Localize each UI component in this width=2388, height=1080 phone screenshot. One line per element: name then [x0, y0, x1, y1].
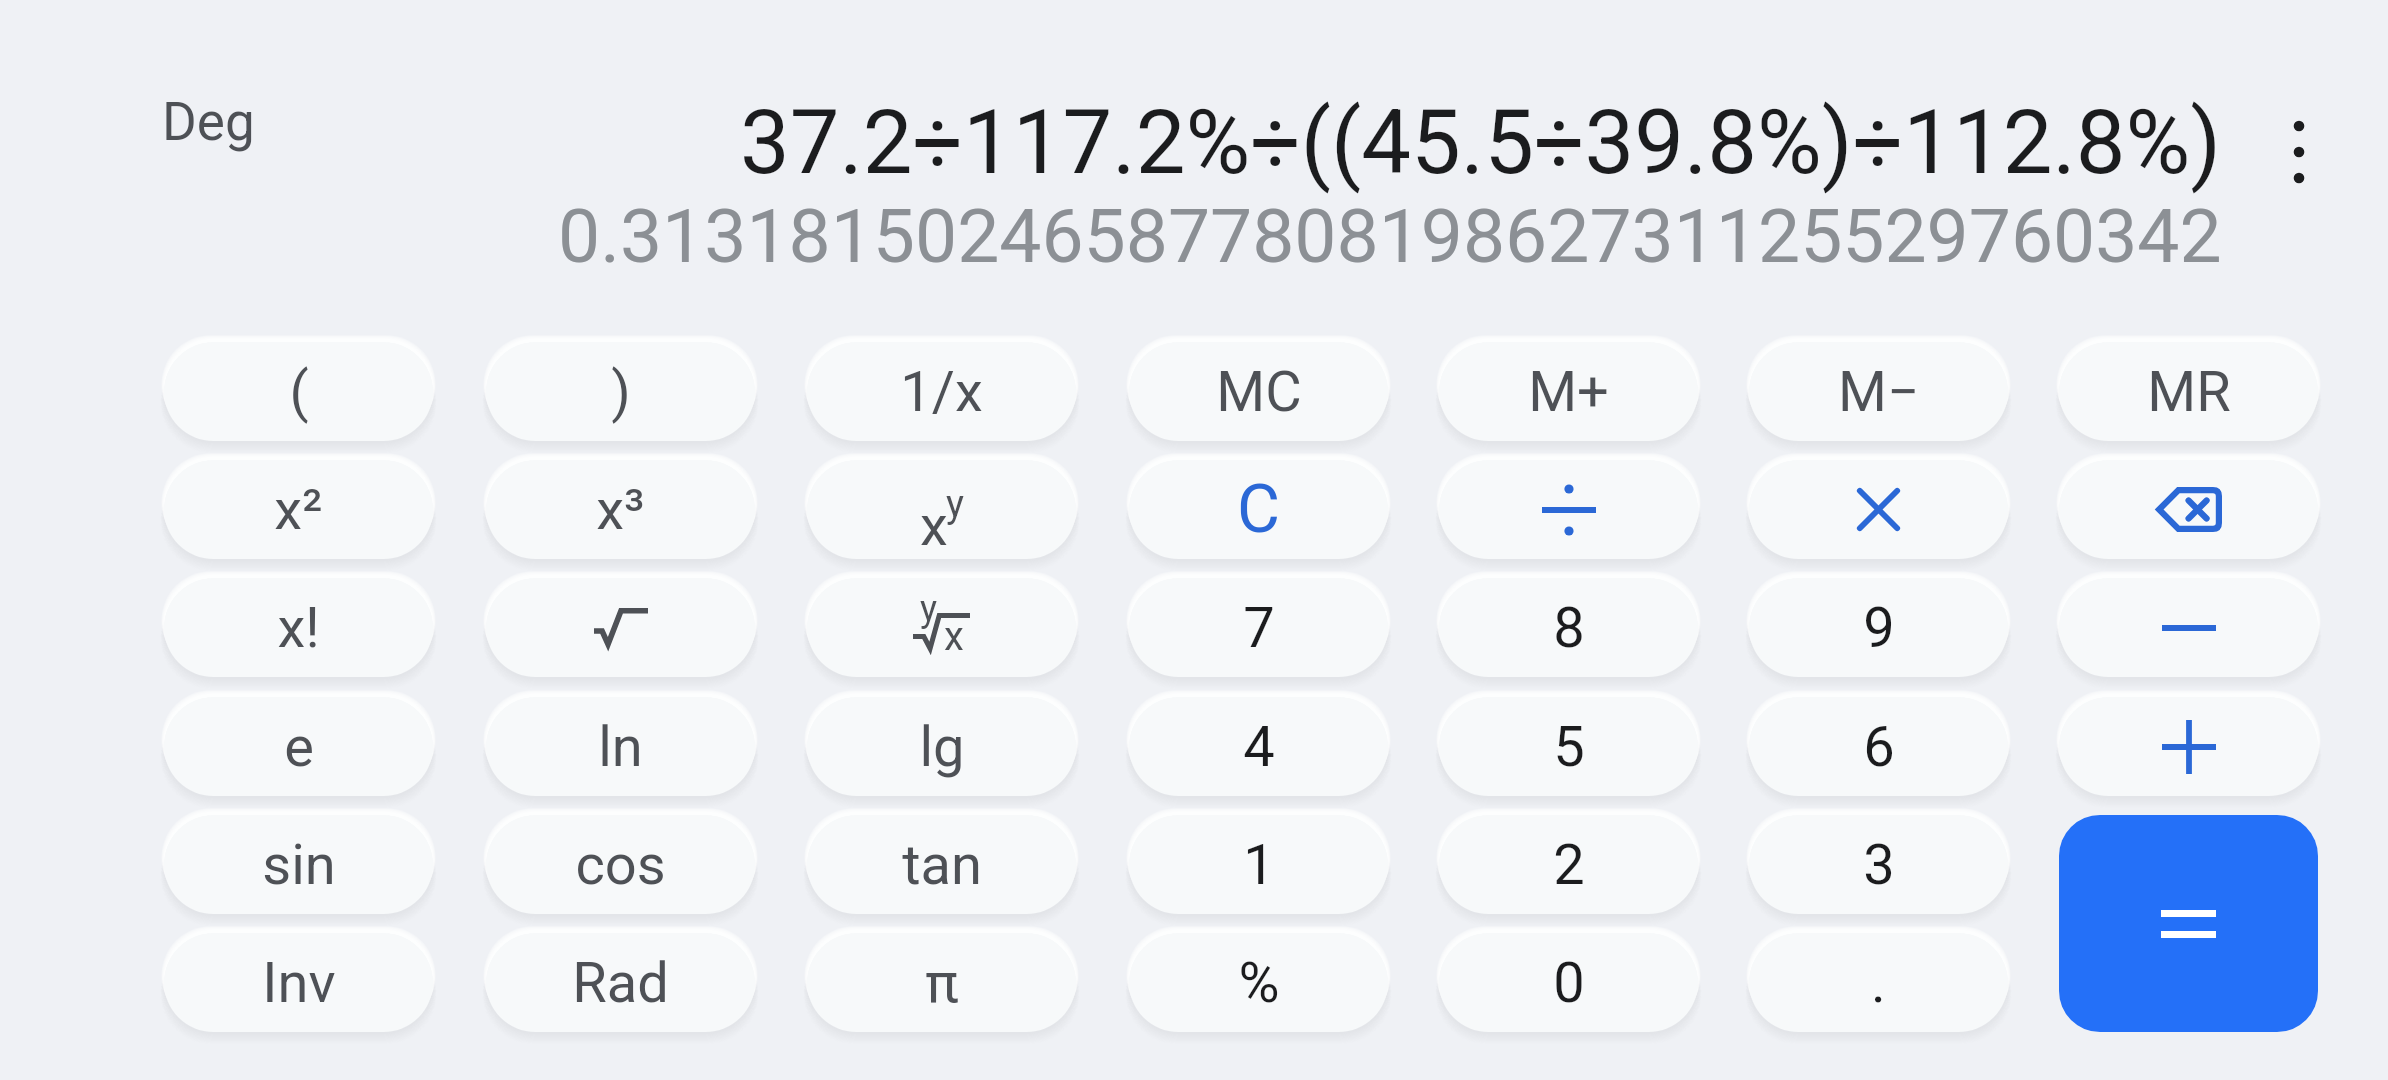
- staticText: (: [289, 359, 309, 425]
- staticText: x³: [596, 477, 645, 543]
- staticText: 8: [1553, 595, 1585, 661]
- staticText: M+: [1528, 359, 1609, 425]
- button[interactable]: Plus: [2059, 697, 2318, 796]
- button[interactable]: %: [1129, 933, 1388, 1032]
- button[interactable]: 1: [1129, 815, 1388, 914]
- staticText: ln: [598, 714, 643, 780]
- button[interactable]: 5: [1439, 697, 1698, 796]
- button[interactable]: e: [164, 697, 433, 796]
- button[interactable]: Equals: [2059, 815, 2318, 1032]
- button[interactable]: Square root: [486, 578, 755, 677]
- staticText: MR: [2147, 359, 2231, 425]
- button[interactable]: Backspace: [2059, 460, 2318, 559]
- button[interactable]: sin: [164, 815, 433, 914]
- button[interactable]: tan: [807, 815, 1076, 914]
- button[interactable]: x²: [164, 460, 433, 559]
- button[interactable]: x!: [164, 578, 433, 677]
- button[interactable]: ln: [486, 697, 755, 796]
- button[interactable]: cos: [486, 815, 755, 914]
- staticText: tan: [902, 832, 982, 898]
- button[interactable]: lg: [807, 697, 1076, 796]
- staticText: 37.2÷117.2%÷((45.5÷39.8%)÷112.8%): [740, 91, 2222, 195]
- staticText: %: [1238, 950, 1280, 1016]
- button[interactable]: 3: [1749, 815, 2008, 914]
- button[interactable]: MC: [1129, 342, 1388, 441]
- staticText: 0: [1553, 950, 1585, 1016]
- staticText: x: [944, 613, 964, 659]
- staticText: M−: [1838, 359, 1919, 425]
- button[interactable]: 8: [1439, 578, 1698, 677]
- button[interactable]: 0: [1439, 933, 1698, 1032]
- staticText: sin: [262, 832, 336, 898]
- staticText: x: [920, 493, 948, 553]
- staticText: lg: [919, 714, 965, 780]
- staticText: 5: [1553, 714, 1585, 780]
- staticText: Rad: [572, 950, 669, 1016]
- staticText: 4: [1243, 714, 1275, 780]
- button[interactable]: Rad: [486, 933, 755, 1032]
- staticText: 1/x: [900, 359, 983, 425]
- button[interactable]: 2: [1439, 815, 1698, 914]
- staticText: Inv: [262, 950, 336, 1016]
- button[interactable]: 7: [1129, 578, 1388, 677]
- button[interactable]: Divide: [1439, 460, 1698, 559]
- button[interactable]: π: [807, 933, 1076, 1032]
- button[interactable]: ): [486, 342, 755, 441]
- staticText: ): [611, 359, 631, 425]
- staticText: e: [284, 714, 314, 780]
- staticText: cos: [575, 832, 666, 898]
- button[interactable]: C: [1129, 460, 1388, 559]
- staticText: 7: [1243, 595, 1275, 661]
- staticText: y: [920, 588, 938, 630]
- button[interactable]: M+: [1439, 342, 1698, 441]
- button[interactable]: 1/x: [807, 342, 1076, 441]
- button[interactable]: Inv: [164, 933, 433, 1032]
- staticText: MC: [1216, 359, 1302, 425]
- staticText: y: [946, 482, 964, 527]
- button[interactable]: 4: [1129, 697, 1388, 796]
- button[interactable]: More options: [2270, 96, 2328, 208]
- button[interactable]: MR: [2059, 342, 2318, 441]
- button[interactable]: 6: [1749, 697, 2008, 796]
- button[interactable]: 9: [1749, 578, 2008, 677]
- button[interactable]: Minus: [2059, 578, 2318, 677]
- staticText: x²: [274, 477, 323, 543]
- staticText: C: [1237, 471, 1280, 548]
- staticText: π: [925, 950, 959, 1016]
- button[interactable]: .: [1749, 933, 2008, 1032]
- staticText: 3: [1863, 832, 1895, 898]
- staticText: 2: [1553, 832, 1585, 898]
- staticText: 6: [1863, 714, 1895, 780]
- staticText: 9: [1863, 595, 1895, 661]
- staticText: x!: [277, 595, 320, 661]
- button[interactable]: (: [164, 342, 433, 441]
- button[interactable]: Nth root: [807, 578, 1076, 677]
- staticText: .: [1871, 950, 1886, 1016]
- staticText: Deg: [162, 91, 255, 153]
- staticText: 0.31318150246587780819862731125529760342: [558, 192, 2222, 280]
- button[interactable]: Multiply: [1749, 460, 2008, 559]
- button[interactable]: x³: [486, 460, 755, 559]
- staticText: 1: [1243, 832, 1275, 898]
- button[interactable]: x to the power of y: [807, 460, 1076, 559]
- button[interactable]: M−: [1749, 342, 2008, 441]
